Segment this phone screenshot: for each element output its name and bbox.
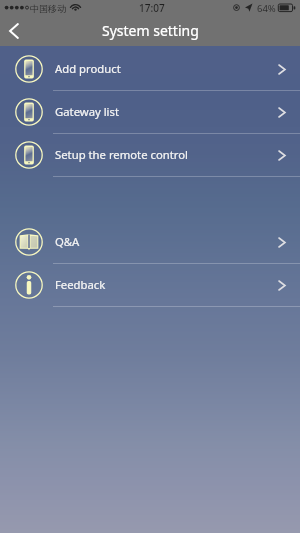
button[interactable]: Setup the remote control [0, 134, 300, 177]
staticText: Feedback [55, 277, 106, 292]
button[interactable]: Q&A [0, 221, 300, 264]
staticText: 17:07 [139, 1, 165, 15]
staticText: Q&A [55, 234, 80, 249]
staticText: Add product [55, 61, 121, 76]
staticText: 中国移动 [30, 3, 66, 14]
staticText: Gateway list [55, 104, 120, 119]
button[interactable]: Back [0, 16, 30, 46]
button[interactable]: Feedback [0, 264, 300, 307]
staticText: 64% [257, 2, 276, 15]
staticText: System setting [102, 21, 199, 40]
button[interactable]: Add product [0, 48, 300, 91]
button[interactable]: Gateway list [0, 91, 300, 134]
staticText: Setup the remote control [55, 147, 188, 162]
